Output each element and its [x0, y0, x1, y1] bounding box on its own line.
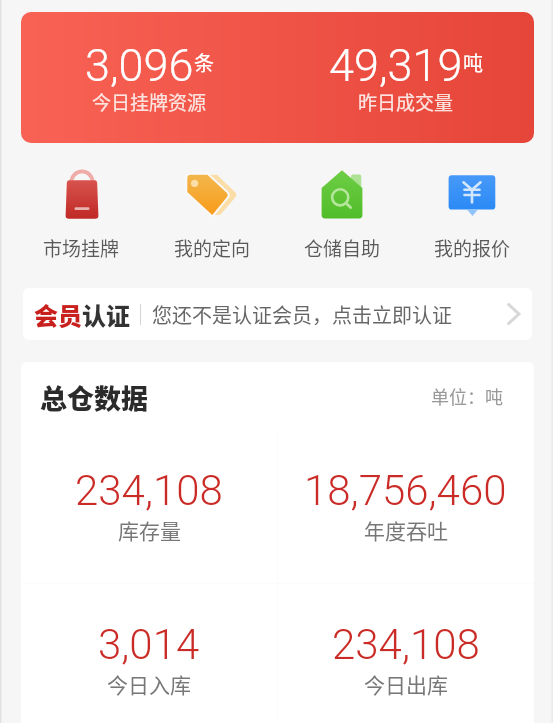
button[interactable]: 3,096 [21, 12, 534, 143]
staticText: 今日挂牌资源 [92, 88, 207, 116]
button[interactable]: 234,108 [277, 620, 534, 699]
staticText: 仓储自助 [304, 234, 381, 262]
button[interactable]: 市场挂牌 [16, 169, 147, 262]
staticText: 我的定向 [174, 234, 251, 262]
staticText: 18,756,460 [304, 466, 507, 515]
staticText: 我的报价 [434, 234, 511, 262]
staticText: 234,108 [332, 620, 480, 669]
staticText: 49,319 [329, 39, 463, 92]
button[interactable]: 我的定向 [147, 169, 277, 262]
button[interactable]: 234,108 [21, 466, 277, 545]
button[interactable]: 会员 [23, 288, 532, 340]
button[interactable]: 我的报价 [407, 169, 537, 262]
staticText: 市场挂牌 [43, 234, 120, 262]
button[interactable]: 仓储自助 [277, 169, 407, 262]
other: 市场挂牌 [56, 169, 108, 221]
staticText: 您还不是认证会员，点击立即认证 [152, 300, 452, 329]
staticText: 今日入库 [107, 669, 191, 699]
other: 我的定向 [186, 169, 238, 221]
staticText: 昨日成交量 [358, 88, 454, 116]
staticText: 3,096 [85, 39, 194, 92]
staticText: 条 [194, 48, 214, 77]
other: 仓储自助 [316, 169, 368, 221]
staticText: 今日出库 [364, 669, 448, 699]
staticText: 单位：吨 [431, 383, 503, 409]
staticText: 234,108 [75, 466, 223, 515]
staticText: 总仓数据 [40, 378, 148, 417]
button[interactable]: 18,756,460 [277, 466, 534, 545]
staticText: 库存量 [118, 515, 181, 545]
button[interactable]: 3,014 [21, 620, 277, 699]
staticText: 会员 [34, 297, 82, 332]
staticText: 3,014 [98, 620, 200, 669]
other: 我的报价 [446, 169, 498, 221]
staticText: 年度吞吐 [364, 515, 448, 545]
staticText: 吨 [463, 48, 483, 77]
staticText: 认证 [82, 297, 130, 332]
